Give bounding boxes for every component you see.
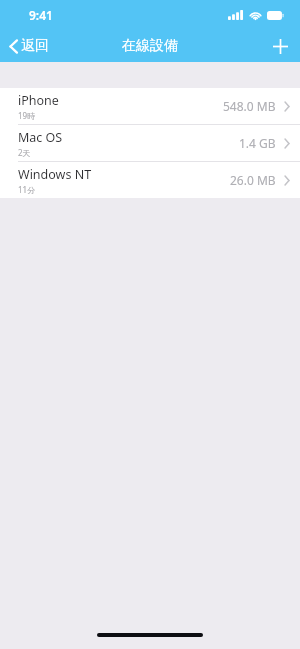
- staticText: 返回: [21, 37, 49, 55]
- button[interactable]: iPhone: [0, 88, 300, 124]
- staticText: 26.0 MB: [230, 172, 276, 188]
- staticText: Windows NT: [18, 166, 92, 183]
- staticText: 11分: [18, 184, 36, 195]
- staticText: 19時: [18, 110, 36, 121]
- staticText: 9:41: [29, 7, 53, 23]
- button[interactable]: 返回: [0, 30, 59, 62]
- staticText: 1.4 GB: [239, 135, 276, 151]
- staticText: iPhone: [18, 92, 59, 109]
- button[interactable]: Mac OS: [0, 125, 300, 161]
- staticText: Mac OS: [18, 129, 63, 146]
- staticText: 548.0 MB: [223, 98, 276, 114]
- staticText: 在線設備: [122, 37, 178, 55]
- staticText: 2天: [18, 147, 31, 158]
- button[interactable]: Add device: [261, 30, 300, 62]
- button[interactable]: Windows NT: [0, 162, 300, 198]
